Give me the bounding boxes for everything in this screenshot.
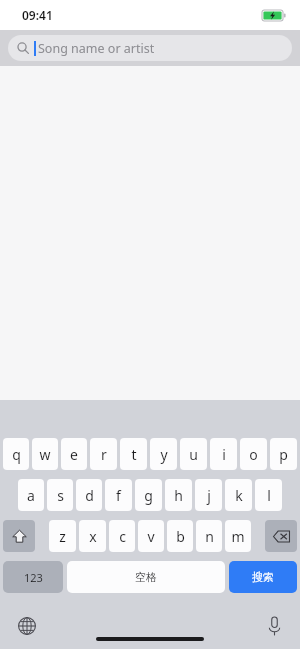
staticText: p [279, 445, 288, 464]
staticText: i [222, 445, 226, 464]
staticText: v [147, 527, 155, 546]
button[interactable]: b [167, 520, 193, 552]
button[interactable]: Song name or artist [8, 35, 292, 61]
button[interactable]: Switch keyboard language [18, 617, 36, 635]
staticText: n [205, 527, 214, 546]
button[interactable]: q [3, 438, 29, 470]
staticText: u [189, 445, 198, 464]
staticText: x [89, 527, 97, 546]
staticText: z [59, 527, 66, 546]
staticText: 搜索 [252, 570, 274, 584]
button[interactable]: t [120, 438, 147, 470]
staticText: 123 [24, 570, 43, 585]
staticText: a [27, 486, 35, 505]
staticText: e [70, 445, 78, 464]
button[interactable]: w [32, 438, 58, 470]
staticText: d [85, 486, 94, 505]
staticText: t [131, 445, 137, 464]
button[interactable]: y [150, 438, 177, 470]
staticText: h [174, 486, 183, 505]
staticText: q [12, 445, 21, 464]
button[interactable]: u [180, 438, 207, 470]
staticText: o [249, 445, 258, 464]
button[interactable]: m [225, 520, 251, 552]
button[interactable]: Shift [3, 520, 35, 552]
button[interactable]: o [240, 438, 267, 470]
button[interactable]: d [76, 479, 102, 511]
button[interactable]: c [109, 520, 135, 552]
button[interactable]: l [255, 479, 282, 511]
staticText: w [39, 445, 51, 464]
button[interactable]: 空格 [67, 561, 225, 593]
button[interactable]: a [18, 479, 44, 511]
button[interactable]: Backspace [265, 520, 297, 552]
button[interactable]: v [138, 520, 164, 552]
staticText: k [235, 486, 243, 505]
button[interactable]: Dictation [269, 617, 280, 636]
staticText: r [101, 445, 107, 464]
staticText: l [267, 486, 271, 505]
staticText: j [207, 486, 211, 505]
button[interactable]: 123 [3, 561, 63, 593]
staticText: 空格 [135, 570, 157, 584]
button[interactable]: e [61, 438, 87, 470]
button[interactable]: n [196, 520, 222, 552]
button[interactable]: f [105, 479, 132, 511]
staticText: c [119, 527, 126, 546]
button[interactable]: 搜索 [229, 561, 297, 593]
staticText: b [176, 527, 185, 546]
button[interactable]: j [195, 479, 222, 511]
staticText: s [57, 486, 64, 505]
staticText: 09:41 [22, 7, 53, 23]
button[interactable]: p [270, 438, 297, 470]
staticText: Song name or artist [38, 40, 155, 57]
button[interactable]: h [165, 479, 192, 511]
button[interactable]: x [79, 520, 106, 552]
button[interactable]: i [210, 438, 237, 470]
staticText: y [160, 445, 168, 464]
button[interactable]: z [49, 520, 76, 552]
button[interactable]: s [47, 479, 73, 511]
button[interactable]: g [135, 479, 162, 511]
staticText: g [144, 486, 153, 505]
button[interactable]: r [90, 438, 117, 470]
button[interactable]: k [225, 479, 252, 511]
staticText: f [116, 486, 121, 505]
staticText: m [231, 527, 245, 546]
